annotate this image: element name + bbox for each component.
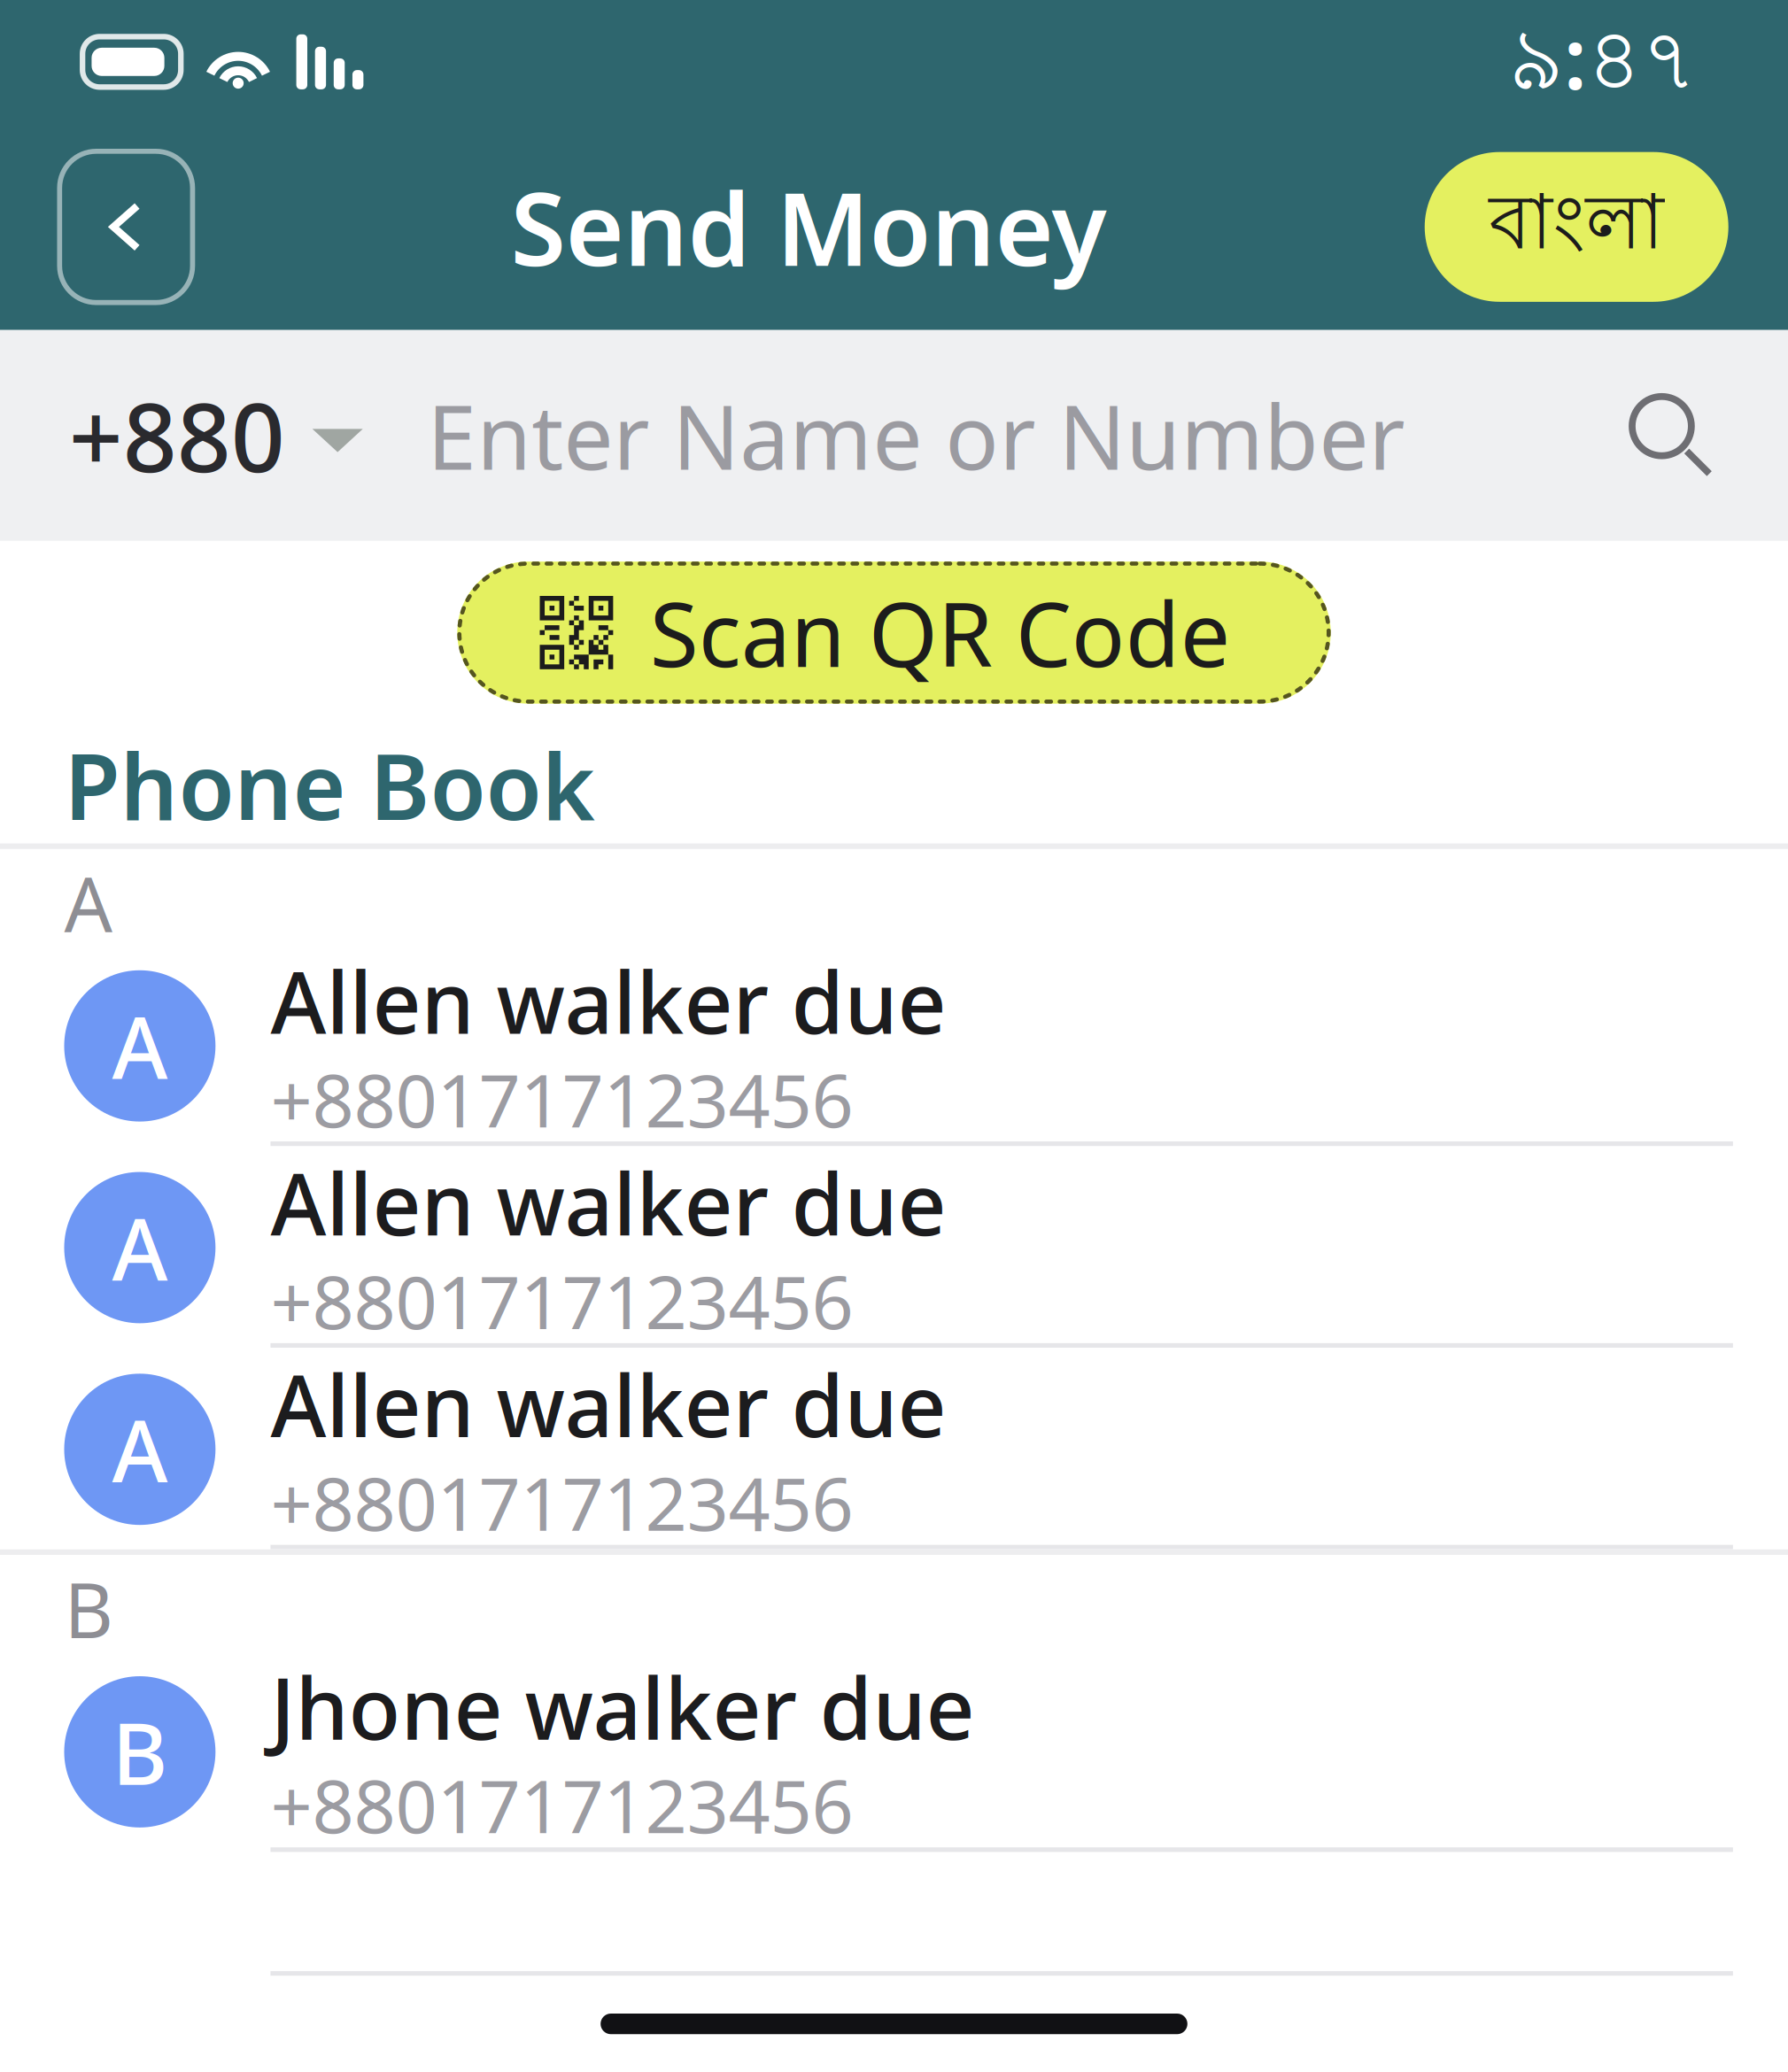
button[interactable]: A — [0, 1348, 1788, 1549]
staticText: Scan QR Code — [650, 574, 1230, 691]
staticText: Allen walker due — [270, 1146, 946, 1259]
button[interactable]: Back — [60, 151, 193, 302]
button[interactable]: বাংলা — [1425, 152, 1728, 302]
staticText: Enter Name or Number — [427, 377, 1405, 494]
staticText: +8801717123456 — [270, 1756, 853, 1853]
staticText: +880 — [69, 373, 285, 498]
staticText: A — [112, 1393, 168, 1506]
button[interactable]: +880 — [0, 330, 390, 541]
button[interactable]: B — [0, 1650, 1788, 1852]
staticText: B — [64, 1559, 113, 1659]
button[interactable]: Search — [1595, 360, 1747, 511]
staticText: A — [64, 853, 113, 953]
button[interactable]: Enter Name or Number — [390, 330, 1595, 541]
staticText: Allen walker due — [270, 1348, 946, 1461]
staticText: +8801717123456 — [270, 1454, 853, 1551]
staticText: +8801717123456 — [270, 1050, 853, 1148]
button[interactable]: A — [0, 944, 1788, 1146]
button[interactable]: A — [0, 1146, 1788, 1348]
staticText: A — [112, 990, 168, 1102]
staticText: +8801717123456 — [270, 1252, 853, 1349]
staticText: Phone Book — [64, 724, 595, 845]
staticText: Jhone walker due — [270, 1650, 974, 1763]
staticText: ৯:৪৭ — [1509, 0, 1696, 124]
staticText: B — [112, 1695, 168, 1808]
staticText: A — [112, 1191, 168, 1304]
staticText: Allen walker due — [270, 944, 946, 1057]
button[interactable]: Scan QR Code — [457, 562, 1331, 704]
staticText: Send Money — [511, 160, 1107, 294]
staticText: বাংলা — [1489, 175, 1664, 279]
